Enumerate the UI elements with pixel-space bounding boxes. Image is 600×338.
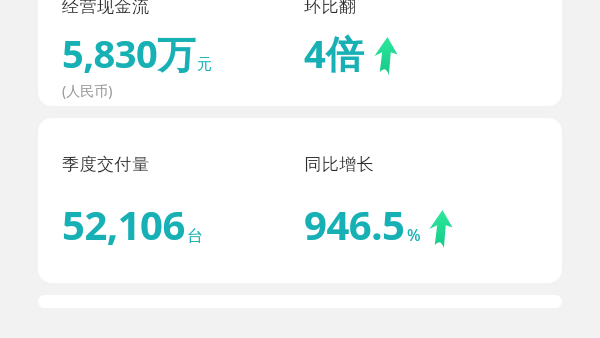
staticText: 经营现金流 (62, 0, 150, 17)
other: Increase (429, 210, 453, 248)
staticText: 946.5 (304, 197, 405, 251)
button[interactable]: 经营现金流 (38, 0, 562, 106)
other: Increase (374, 37, 398, 75)
staticText: 同比增长 (304, 154, 374, 175)
staticText: 季度交付量 (62, 154, 150, 175)
staticText: 4倍 (304, 27, 364, 79)
staticText: 52,106 (62, 197, 185, 251)
staticText: (人民币) (62, 81, 113, 100)
staticText: 环比翻 (304, 0, 357, 17)
staticText: % (407, 224, 421, 246)
staticText: 5,830万 (62, 27, 195, 79)
staticText: 台 (187, 226, 203, 246)
staticText: 元 (197, 55, 212, 74)
button[interactable]: 季度交付量 (38, 118, 562, 283)
